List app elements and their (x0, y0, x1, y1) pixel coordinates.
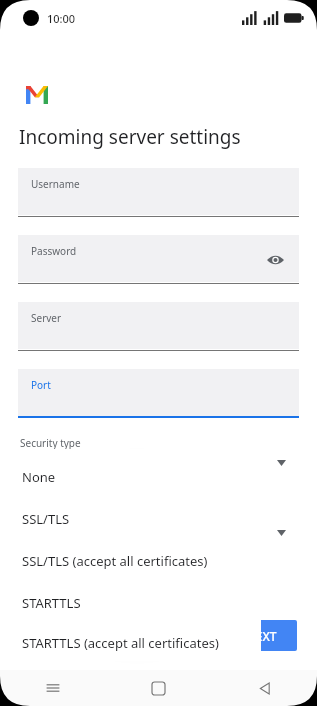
button[interactable]: SSL/TLS (accept all certificates) (13, 540, 261, 582)
staticText: Username (31, 177, 80, 191)
button[interactable]: Password (18, 235, 299, 284)
button[interactable]: Port (18, 369, 299, 418)
staticText: Security type (20, 436, 81, 450)
button[interactable]: Expand dropdown (272, 524, 290, 542)
staticText: None (22, 468, 56, 486)
staticText: STARTTLS (22, 594, 81, 612)
staticText: SSL/TLS (accept all certificates) (22, 552, 208, 570)
staticText: Port (31, 378, 51, 392)
button[interactable]: Home (105, 670, 211, 706)
button[interactable]: Expand dropdown (272, 454, 290, 472)
button[interactable]: NEXT (226, 620, 297, 651)
staticText: Incoming server settings (19, 124, 241, 150)
button[interactable]: Username (18, 168, 299, 217)
staticText: NEXT (246, 628, 277, 644)
button[interactable]: STARTTLS (13, 582, 261, 624)
staticText: STARTTLS (accept all certificates) (22, 634, 219, 652)
button[interactable]: Server (18, 302, 299, 351)
button[interactable]: STARTTLS (accept all certificates) (13, 624, 261, 661)
button[interactable]: SSL/TLS (13, 498, 261, 540)
button[interactable]: None (13, 456, 261, 498)
button[interactable]: Recent apps (0, 670, 105, 706)
button[interactable]: Back (211, 670, 317, 706)
staticText: 10:00 (47, 11, 76, 26)
button[interactable]: Show password (263, 248, 287, 272)
staticText: SSL/TLS (22, 510, 70, 528)
staticText: Server (31, 311, 62, 325)
staticText: Password (31, 244, 77, 258)
